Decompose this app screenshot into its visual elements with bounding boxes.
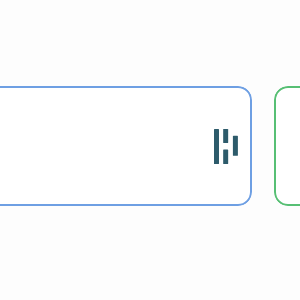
button[interactable]: Next card xyxy=(274,86,300,206)
button[interactable]: Featured card xyxy=(0,86,252,206)
